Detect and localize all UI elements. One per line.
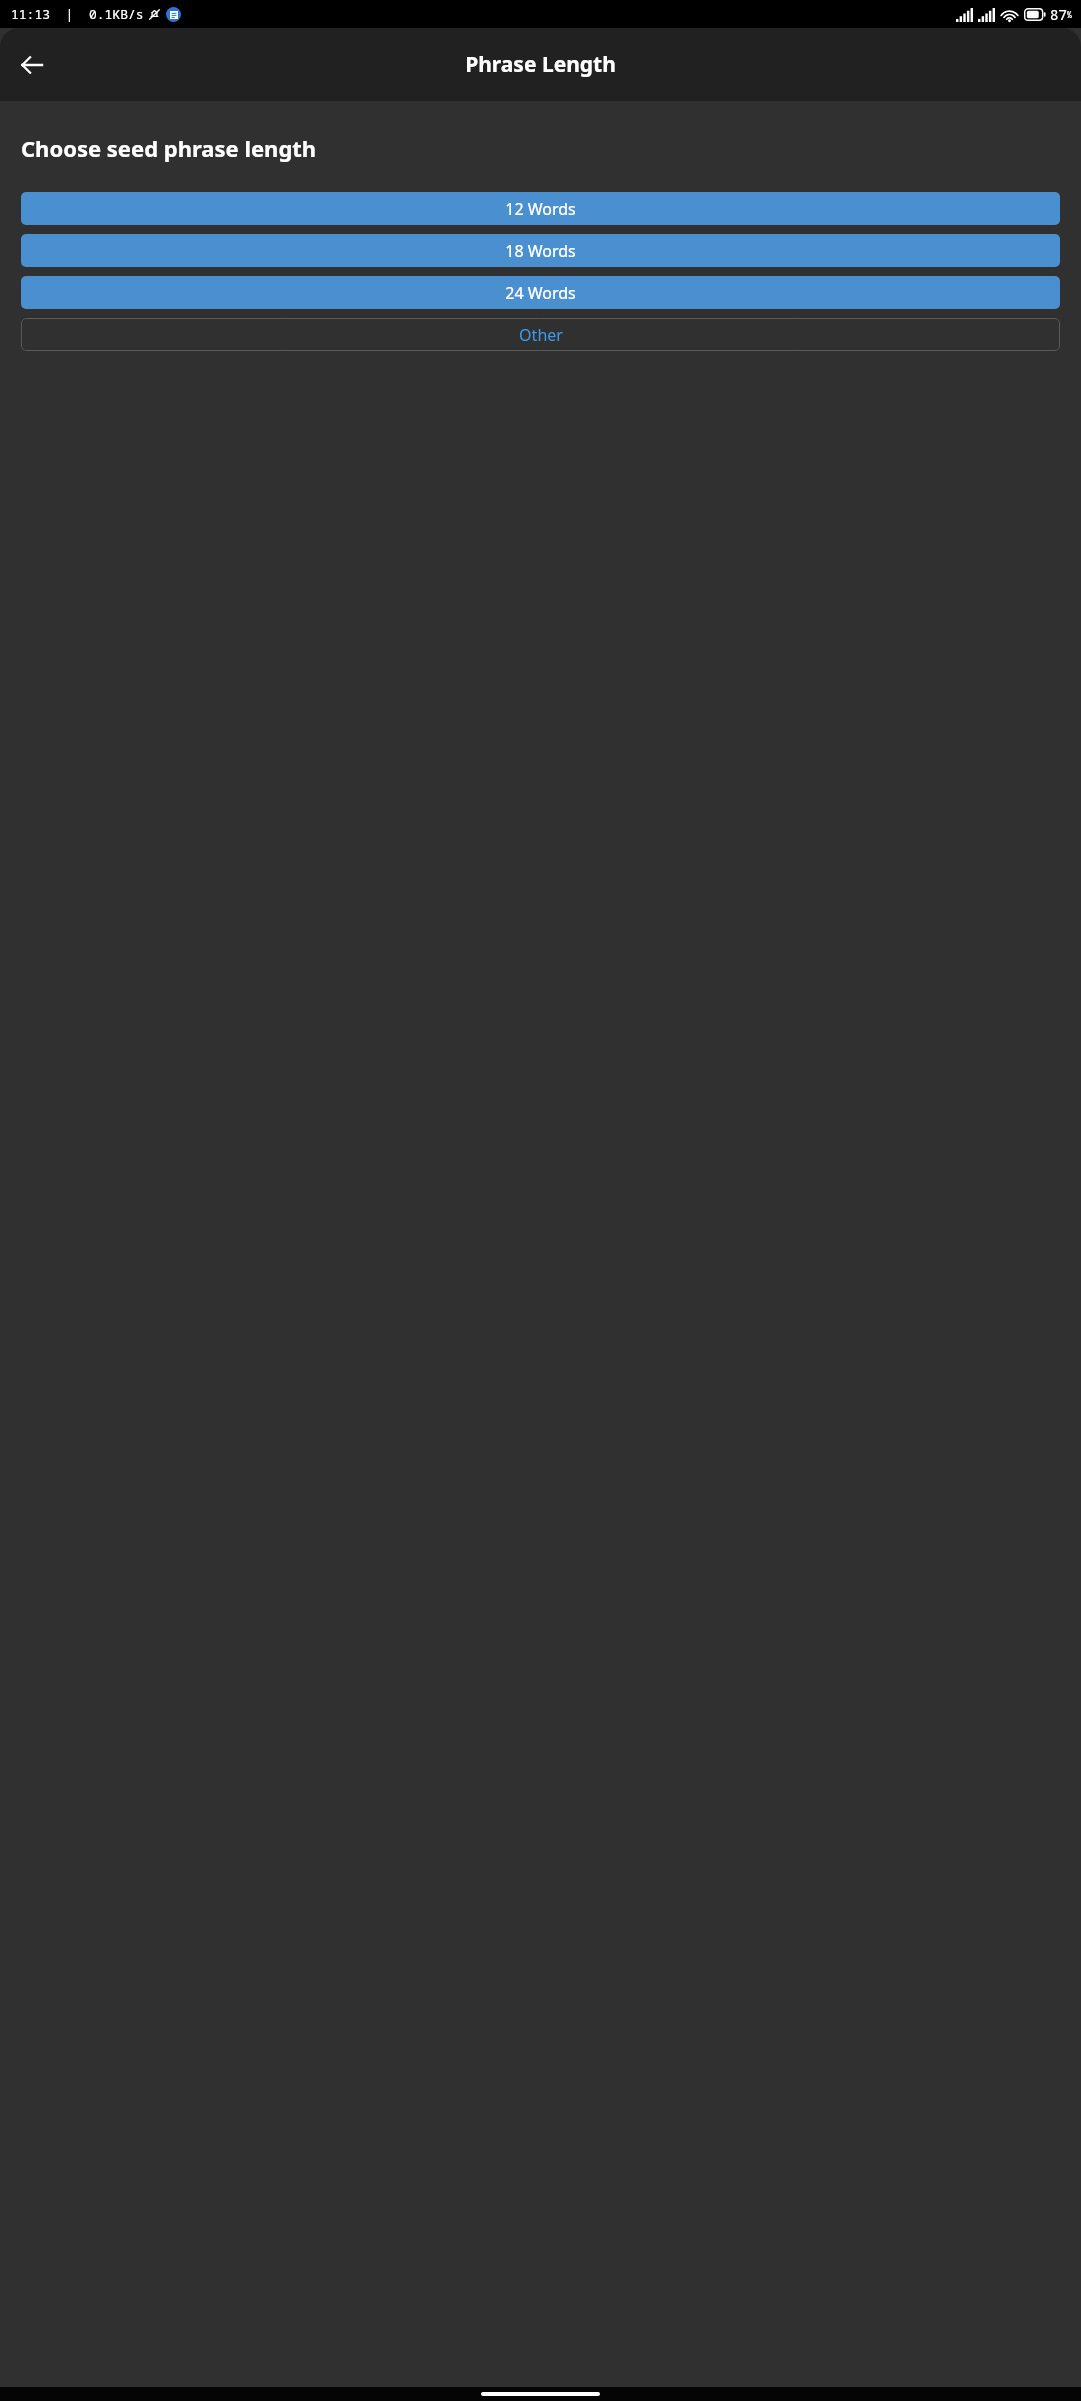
staticText: 12 Words xyxy=(505,198,576,220)
button[interactable]: 18 Words xyxy=(21,234,1060,267)
staticText: Choose seed phrase length xyxy=(21,133,317,163)
button[interactable]: 12 Words xyxy=(21,192,1060,225)
button[interactable]: Other xyxy=(21,318,1060,351)
staticText: 18 Words xyxy=(505,240,576,262)
staticText: Other xyxy=(519,324,563,346)
button[interactable]: 24 Words xyxy=(21,276,1060,309)
staticText: Phrase Length xyxy=(465,50,616,79)
staticText: % xyxy=(1067,9,1072,20)
button[interactable]: Back xyxy=(8,41,56,89)
staticText: 11:13 | 0.1KB/s xyxy=(11,5,144,23)
staticText: 87 xyxy=(1050,5,1067,24)
staticText: 24 Words xyxy=(505,282,576,304)
